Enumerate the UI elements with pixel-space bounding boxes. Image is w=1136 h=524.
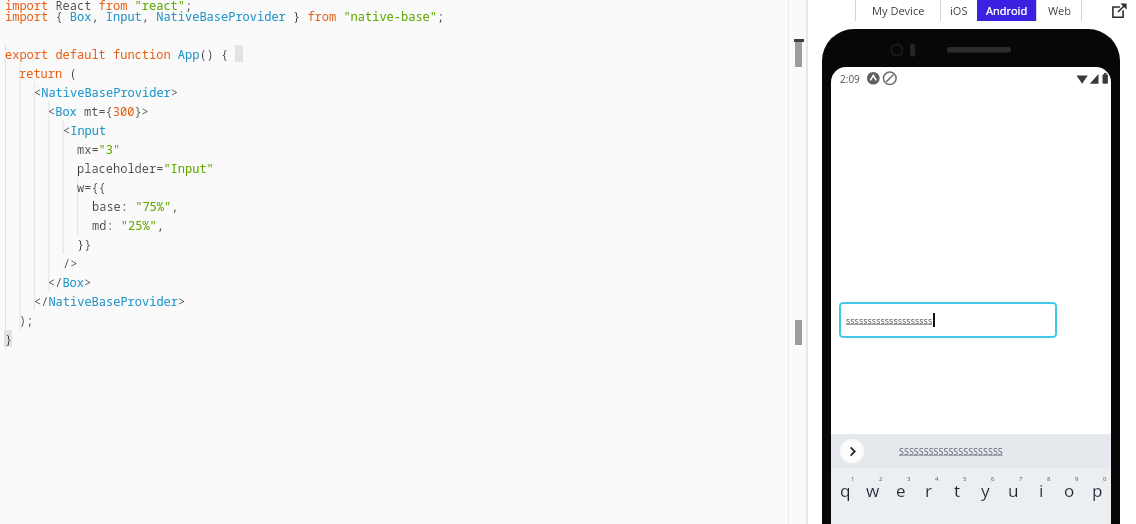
button[interactable]: 8 (1027, 468, 1055, 524)
staticText: ssssssssssssssssssss (846, 314, 933, 326)
staticText: o (1064, 479, 1075, 502)
button[interactable]: 6 (971, 468, 999, 524)
staticText: /> (63, 255, 78, 271)
button[interactable]: 4 (915, 468, 943, 524)
staticText: </Box> (48, 274, 92, 290)
button[interactable]: Open preview in new window (1105, 0, 1133, 21)
staticText: export default function App() { (5, 46, 229, 62)
button[interactable]: iOS (941, 0, 977, 21)
staticText: 9 (1075, 475, 1079, 483)
staticText: placeholder="Input" (77, 160, 214, 176)
button[interactable]: 0 (1083, 468, 1111, 524)
staticText: 7 (1019, 475, 1023, 483)
staticText: <Box mt={300}> (48, 103, 149, 119)
staticText: 3 (907, 475, 911, 483)
staticText: i (1039, 479, 1044, 502)
staticText: 4 (935, 475, 939, 483)
button[interactable]: Show more suggestions (840, 439, 864, 463)
staticText: Android (986, 3, 1028, 18)
staticText: Web (1048, 3, 1071, 18)
staticText: md: "25%", (92, 217, 165, 233)
staticText: <Input (63, 122, 107, 138)
staticText: w (866, 479, 880, 502)
staticText: 8 (1047, 475, 1051, 483)
staticText: My Device (872, 3, 925, 18)
staticText: mx="3" (77, 141, 121, 157)
button[interactable]: 5 (943, 468, 971, 524)
staticText: SSSSSSSSSSSSSSSSSSSSS (899, 445, 1003, 457)
staticText: <NativeBaseProvider> (34, 84, 179, 100)
staticText: 5 (963, 475, 967, 483)
staticText: q (840, 479, 851, 502)
staticText: t (954, 479, 961, 502)
staticText: return ( (19, 65, 77, 81)
staticText: u (1008, 479, 1019, 502)
button[interactable]: 1 (831, 468, 859, 524)
button[interactable]: Web (1037, 0, 1081, 21)
staticText: 6 (991, 475, 995, 483)
button[interactable]: 7 (999, 468, 1027, 524)
button[interactable]: My Device (856, 0, 940, 21)
staticText: e (896, 479, 906, 502)
staticText: 2:09 (840, 72, 860, 86)
staticText: import React from "react"; (5, 0, 193, 13)
staticText: 0 (1103, 475, 1107, 483)
staticText: p (1092, 479, 1103, 502)
button[interactable]: 2 (859, 468, 887, 524)
button[interactable]: ssssssssssssssssssss (839, 302, 1057, 338)
staticText: 1 (851, 475, 855, 483)
staticText: base: "75%", (92, 198, 179, 214)
staticText: ); (19, 312, 34, 328)
staticText: w={{ (77, 179, 106, 195)
staticText: r (925, 479, 933, 502)
staticText: iOS (950, 3, 968, 18)
button[interactable]: 9 (1055, 468, 1083, 524)
staticText: </NativeBaseProvider> (34, 293, 186, 309)
staticText: y (981, 479, 990, 502)
button[interactable]: Android (977, 0, 1036, 21)
button[interactable]: 3 (887, 468, 915, 524)
staticText: }} (77, 236, 92, 252)
staticText: import { Box, Input, NativeBaseProvider … (5, 8, 445, 24)
staticText: 2 (879, 475, 883, 483)
staticText: } (5, 331, 13, 347)
